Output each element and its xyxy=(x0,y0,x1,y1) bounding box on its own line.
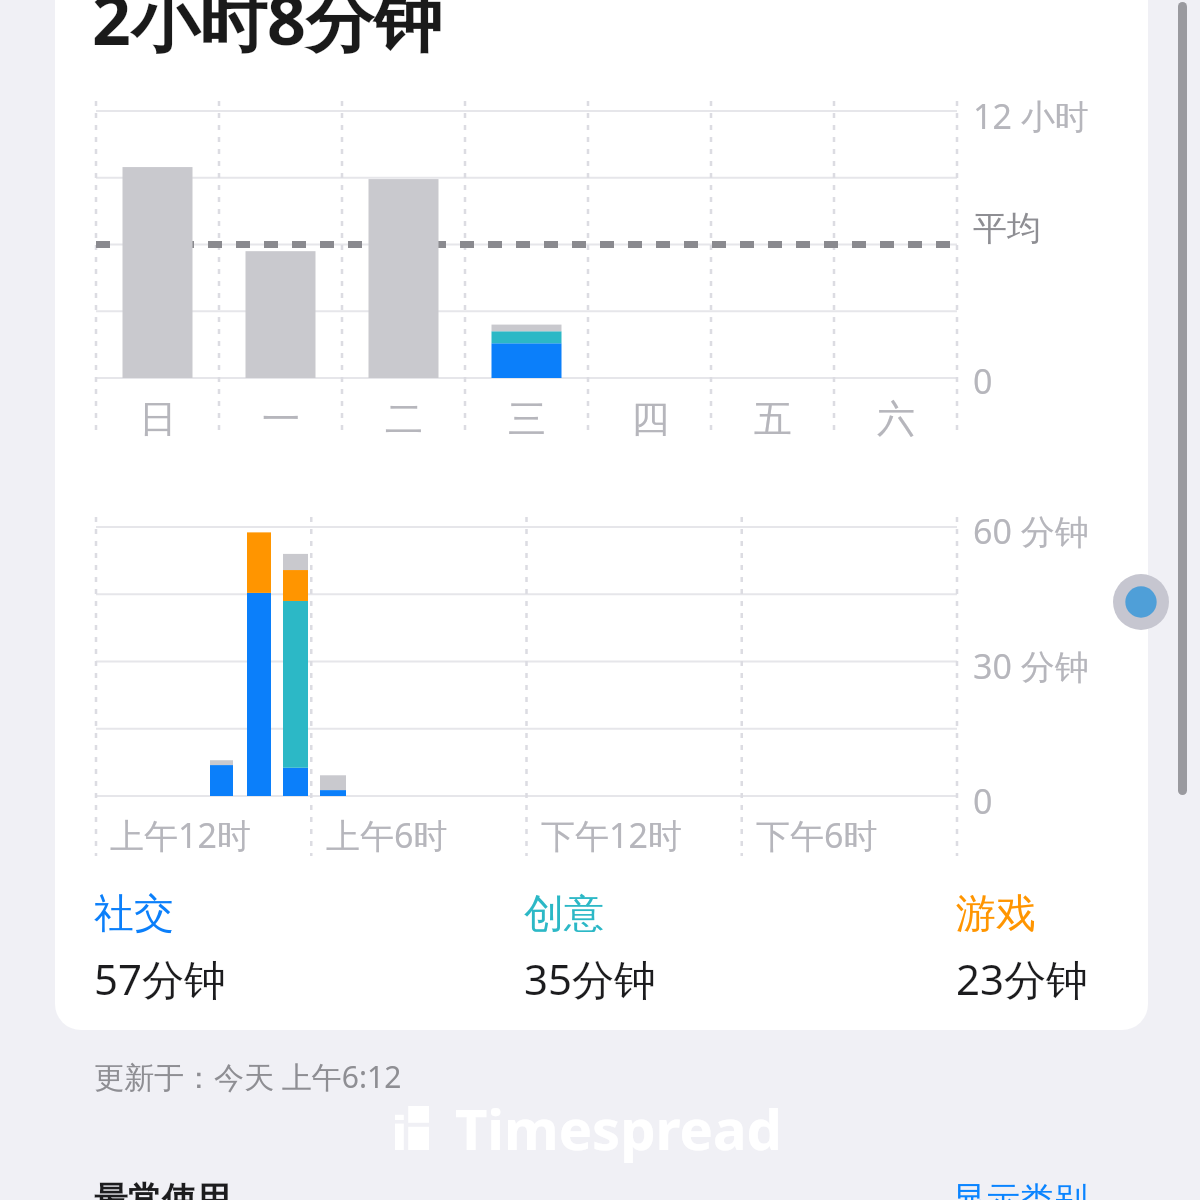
staticText: 12 小时 xyxy=(973,93,1089,139)
staticText: 上午6时 xyxy=(326,812,448,858)
staticText: 57分钟 xyxy=(94,950,227,1007)
staticText: 更新于：今天 上午6:12 xyxy=(94,1056,402,1097)
staticText: 一 xyxy=(262,395,300,443)
staticText: 四 xyxy=(631,395,669,443)
staticText: 上午12时 xyxy=(110,812,251,858)
staticText: 显示类别 xyxy=(952,1178,1088,1200)
other: Touch indicator xyxy=(1113,574,1169,630)
staticText: 日 xyxy=(139,395,177,443)
staticText: 二 xyxy=(385,395,423,443)
staticText: 六 xyxy=(877,395,915,443)
staticText: Timespread xyxy=(455,1090,782,1166)
staticText: 30 分钟 xyxy=(973,643,1089,689)
staticText: 下午12时 xyxy=(541,812,682,858)
button[interactable]: 游戏 xyxy=(956,888,1089,1007)
staticText: 2小时8分钟 xyxy=(92,0,442,65)
staticText: 平均 xyxy=(973,207,1041,250)
staticText: 社交 xyxy=(94,888,174,938)
button[interactable]: 显示类别 xyxy=(952,1178,1088,1200)
staticText: 35分钟 xyxy=(524,950,657,1007)
staticText: 游戏 xyxy=(956,888,1036,938)
staticText: 三 xyxy=(508,395,546,443)
staticText: 0 xyxy=(973,358,993,404)
staticText: 23分钟 xyxy=(956,950,1089,1007)
staticText: 最常使用 xyxy=(94,1178,230,1200)
staticText: 五 xyxy=(754,395,792,443)
button[interactable]: 创意 xyxy=(524,888,657,1007)
staticText: 下午6时 xyxy=(756,812,878,858)
staticText: 创意 xyxy=(524,888,604,938)
staticText: 60 分钟 xyxy=(973,508,1089,554)
button[interactable]: 社交 xyxy=(94,888,227,1007)
staticText: 0 xyxy=(973,778,993,824)
